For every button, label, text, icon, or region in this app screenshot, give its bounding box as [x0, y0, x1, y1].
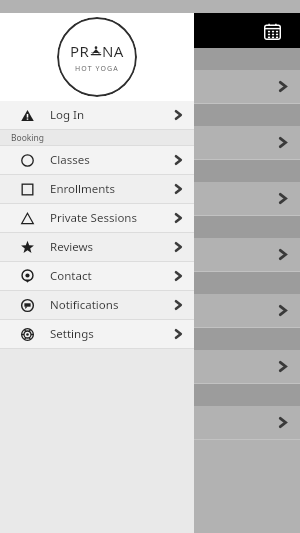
button[interactable]	[0, 182, 300, 215]
staticText: Sun, May 07	[10, 221, 62, 233]
staticText: Enrollments	[50, 181, 115, 197]
staticText: PR	[70, 41, 90, 61]
button[interactable]: Prana Hot Yoga logo	[57, 17, 137, 97]
staticText: Private Sessions	[50, 210, 137, 226]
staticText: Tue, May 09	[10, 333, 61, 345]
button[interactable]: Settings	[0, 320, 194, 348]
staticText: Contact	[50, 268, 92, 284]
button[interactable]: Calendar	[260, 19, 284, 43]
button[interactable]: Private Sessions	[0, 204, 194, 232]
button[interactable]: Log In	[0, 101, 194, 129]
staticText: Thu, May 04	[10, 53, 62, 65]
staticText: HOT YOGA	[75, 64, 119, 74]
button[interactable]: Contact	[0, 262, 194, 290]
staticText: Settings	[50, 326, 94, 342]
staticText: Classes	[50, 152, 90, 168]
staticText: Fri, May 05	[10, 109, 56, 121]
button[interactable]	[0, 238, 300, 271]
button[interactable]	[0, 70, 300, 103]
staticText: NA	[102, 41, 124, 61]
staticText: Sat, May 06	[10, 165, 59, 177]
button[interactable]: Notifications	[0, 291, 194, 319]
button[interactable]	[0, 126, 300, 159]
button[interactable]: Enrollments	[0, 175, 194, 203]
staticText: Notifications	[50, 297, 119, 313]
staticText: Booking	[11, 132, 45, 144]
button[interactable]	[0, 294, 300, 327]
staticText: Reviews	[50, 239, 94, 255]
button[interactable]	[0, 350, 300, 383]
staticText: Log In	[50, 107, 85, 123]
button[interactable]	[0, 406, 300, 439]
button[interactable]: Classes	[0, 146, 194, 174]
staticText: Mon, May 08	[10, 277, 65, 289]
button[interactable]: Reviews	[0, 233, 194, 261]
